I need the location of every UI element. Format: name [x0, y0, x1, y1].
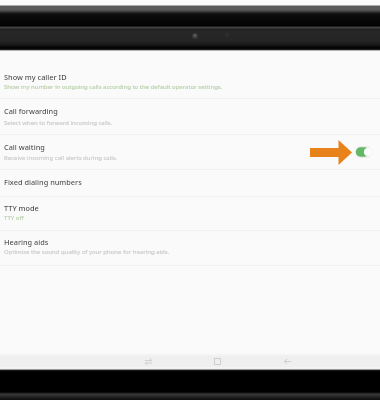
staticText: TTY mode [4, 203, 39, 213]
button[interactable]: Call forwarding [0, 99, 380, 135]
staticText: Receive incoming call alerts during call… [4, 154, 380, 162]
staticText: Select when to forward incoming calls. [4, 119, 380, 127]
staticText: Call waiting [4, 142, 45, 152]
button[interactable]: Hearing aids [0, 231, 380, 266]
staticText: TTY off [4, 214, 380, 222]
button[interactable]: TTY mode [0, 197, 380, 231]
button[interactable]: Call waiting toggle [352, 144, 376, 160]
button[interactable]: Call waiting [0, 135, 380, 170]
button[interactable]: Home [207, 355, 227, 368]
staticText: Show my number in outgoing calls accordi… [4, 83, 380, 91]
staticText: Optimize the sound quality of your phone… [4, 248, 380, 256]
button[interactable]: Show my caller ID [0, 50, 380, 99]
button[interactable]: Recents [138, 355, 158, 368]
button[interactable]: Fixed dialing numbers [0, 170, 380, 197]
button[interactable]: Back [277, 355, 297, 368]
staticText: Hearing aids [4, 237, 49, 247]
staticText: Fixed dialing numbers [4, 177, 82, 187]
staticText: Show my caller ID [4, 72, 67, 82]
staticText: Call forwarding [4, 106, 58, 116]
